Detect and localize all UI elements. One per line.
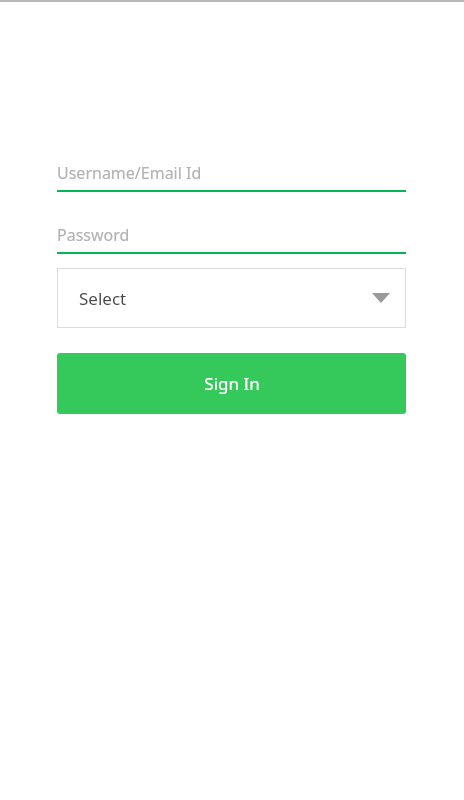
staticText: Sign In <box>204 372 260 395</box>
staticText: Select <box>79 287 127 310</box>
other: Open dropdown <box>372 293 390 303</box>
button[interactable]: Select <box>57 268 406 328</box>
staticText: Password <box>57 224 130 246</box>
staticText: Username/Email Id <box>57 162 202 184</box>
button[interactable]: Sign In <box>57 353 406 414</box>
button[interactable]: Username/Email Id <box>57 160 406 192</box>
button[interactable]: Password <box>57 222 406 254</box>
